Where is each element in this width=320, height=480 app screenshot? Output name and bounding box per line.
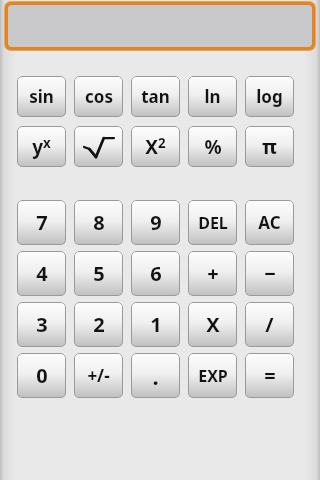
- staticText: 6: [150, 260, 162, 287]
- staticText: −: [264, 260, 276, 287]
- staticText: cos: [85, 85, 113, 108]
- staticText: 7: [36, 209, 48, 236]
- staticText: /: [265, 311, 274, 338]
- button[interactable]: tan: [131, 76, 180, 117]
- staticText: +/-: [87, 364, 110, 387]
- staticText: .: [152, 361, 159, 391]
- staticText: sin: [29, 85, 54, 108]
- button[interactable]: 6: [131, 251, 180, 296]
- staticText: +: [207, 260, 219, 287]
- button[interactable]: .: [131, 353, 180, 398]
- button[interactable]: X: [188, 302, 237, 347]
- staticText: 2: [93, 311, 105, 338]
- staticText: AC: [258, 211, 281, 234]
- button[interactable]: %: [188, 126, 237, 167]
- button[interactable]: EXP: [188, 353, 237, 398]
- staticText: π: [262, 133, 277, 160]
- staticText: 5: [93, 260, 105, 287]
- staticText: 9: [150, 209, 162, 236]
- staticText: 4: [36, 260, 48, 287]
- button[interactable]: 7: [17, 200, 66, 245]
- staticText: =: [264, 362, 276, 389]
- staticText: tan: [141, 85, 170, 108]
- button[interactable]: −: [245, 251, 294, 296]
- button[interactable]: =: [245, 353, 294, 398]
- button[interactable]: /: [245, 302, 294, 347]
- button[interactable]: AC: [245, 200, 294, 245]
- button[interactable]: cos: [74, 76, 123, 117]
- button[interactable]: 2: [74, 302, 123, 347]
- button[interactable]: yx: [17, 126, 66, 167]
- button[interactable]: Display: [8, 5, 312, 47]
- staticText: 1: [150, 311, 162, 338]
- button[interactable]: 1: [131, 302, 180, 347]
- button[interactable]: ln: [188, 76, 237, 117]
- staticText: yx: [32, 134, 51, 160]
- button[interactable]: +/-: [74, 353, 123, 398]
- staticText: X: [206, 311, 220, 338]
- staticText: 0: [36, 362, 48, 389]
- button[interactable]: 4: [17, 251, 66, 296]
- button[interactable]: 5: [74, 251, 123, 296]
- staticText: log: [256, 85, 283, 108]
- staticText: DEL: [198, 212, 228, 234]
- staticText: %: [204, 134, 222, 160]
- button[interactable]: X2: [131, 126, 180, 167]
- button[interactable]: sin: [17, 76, 66, 117]
- staticText: ln: [204, 85, 221, 108]
- staticText: 8: [93, 209, 105, 236]
- button[interactable]: 0: [17, 353, 66, 398]
- staticText: EXP: [198, 365, 228, 387]
- button[interactable]: π: [245, 126, 294, 167]
- button[interactable]: +: [188, 251, 237, 296]
- button[interactable]: log: [245, 76, 294, 117]
- button[interactable]: DEL: [188, 200, 237, 245]
- button[interactable]: 8: [74, 200, 123, 245]
- button[interactable]: 9: [131, 200, 180, 245]
- button[interactable]: 3: [17, 302, 66, 347]
- staticText: 3: [36, 311, 48, 338]
- staticText: X2: [145, 134, 166, 160]
- button[interactable]: Square root: [74, 126, 123, 167]
